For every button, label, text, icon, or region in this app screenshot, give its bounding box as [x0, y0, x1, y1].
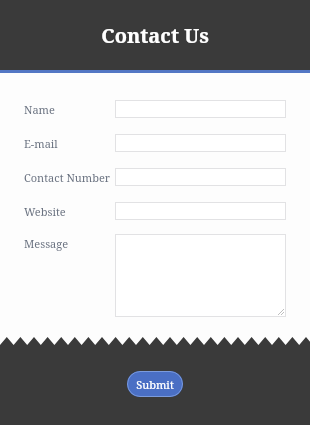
staticText: Name: [24, 102, 55, 117]
button[interactable]: Name: [115, 100, 286, 118]
staticText: Submit: [136, 377, 174, 392]
button[interactable]: Website: [115, 202, 286, 220]
staticText: Website: [24, 204, 66, 219]
staticText: E-mail: [24, 136, 58, 151]
button[interactable]: [115, 234, 286, 317]
staticText: Contact Number: [24, 170, 110, 185]
staticText: Contact Us: [101, 22, 209, 49]
staticText: Message: [24, 236, 69, 251]
button[interactable]: E-mail: [115, 134, 286, 152]
button[interactable]: Submit: [127, 371, 183, 397]
button[interactable]: Contact Number: [115, 168, 286, 186]
